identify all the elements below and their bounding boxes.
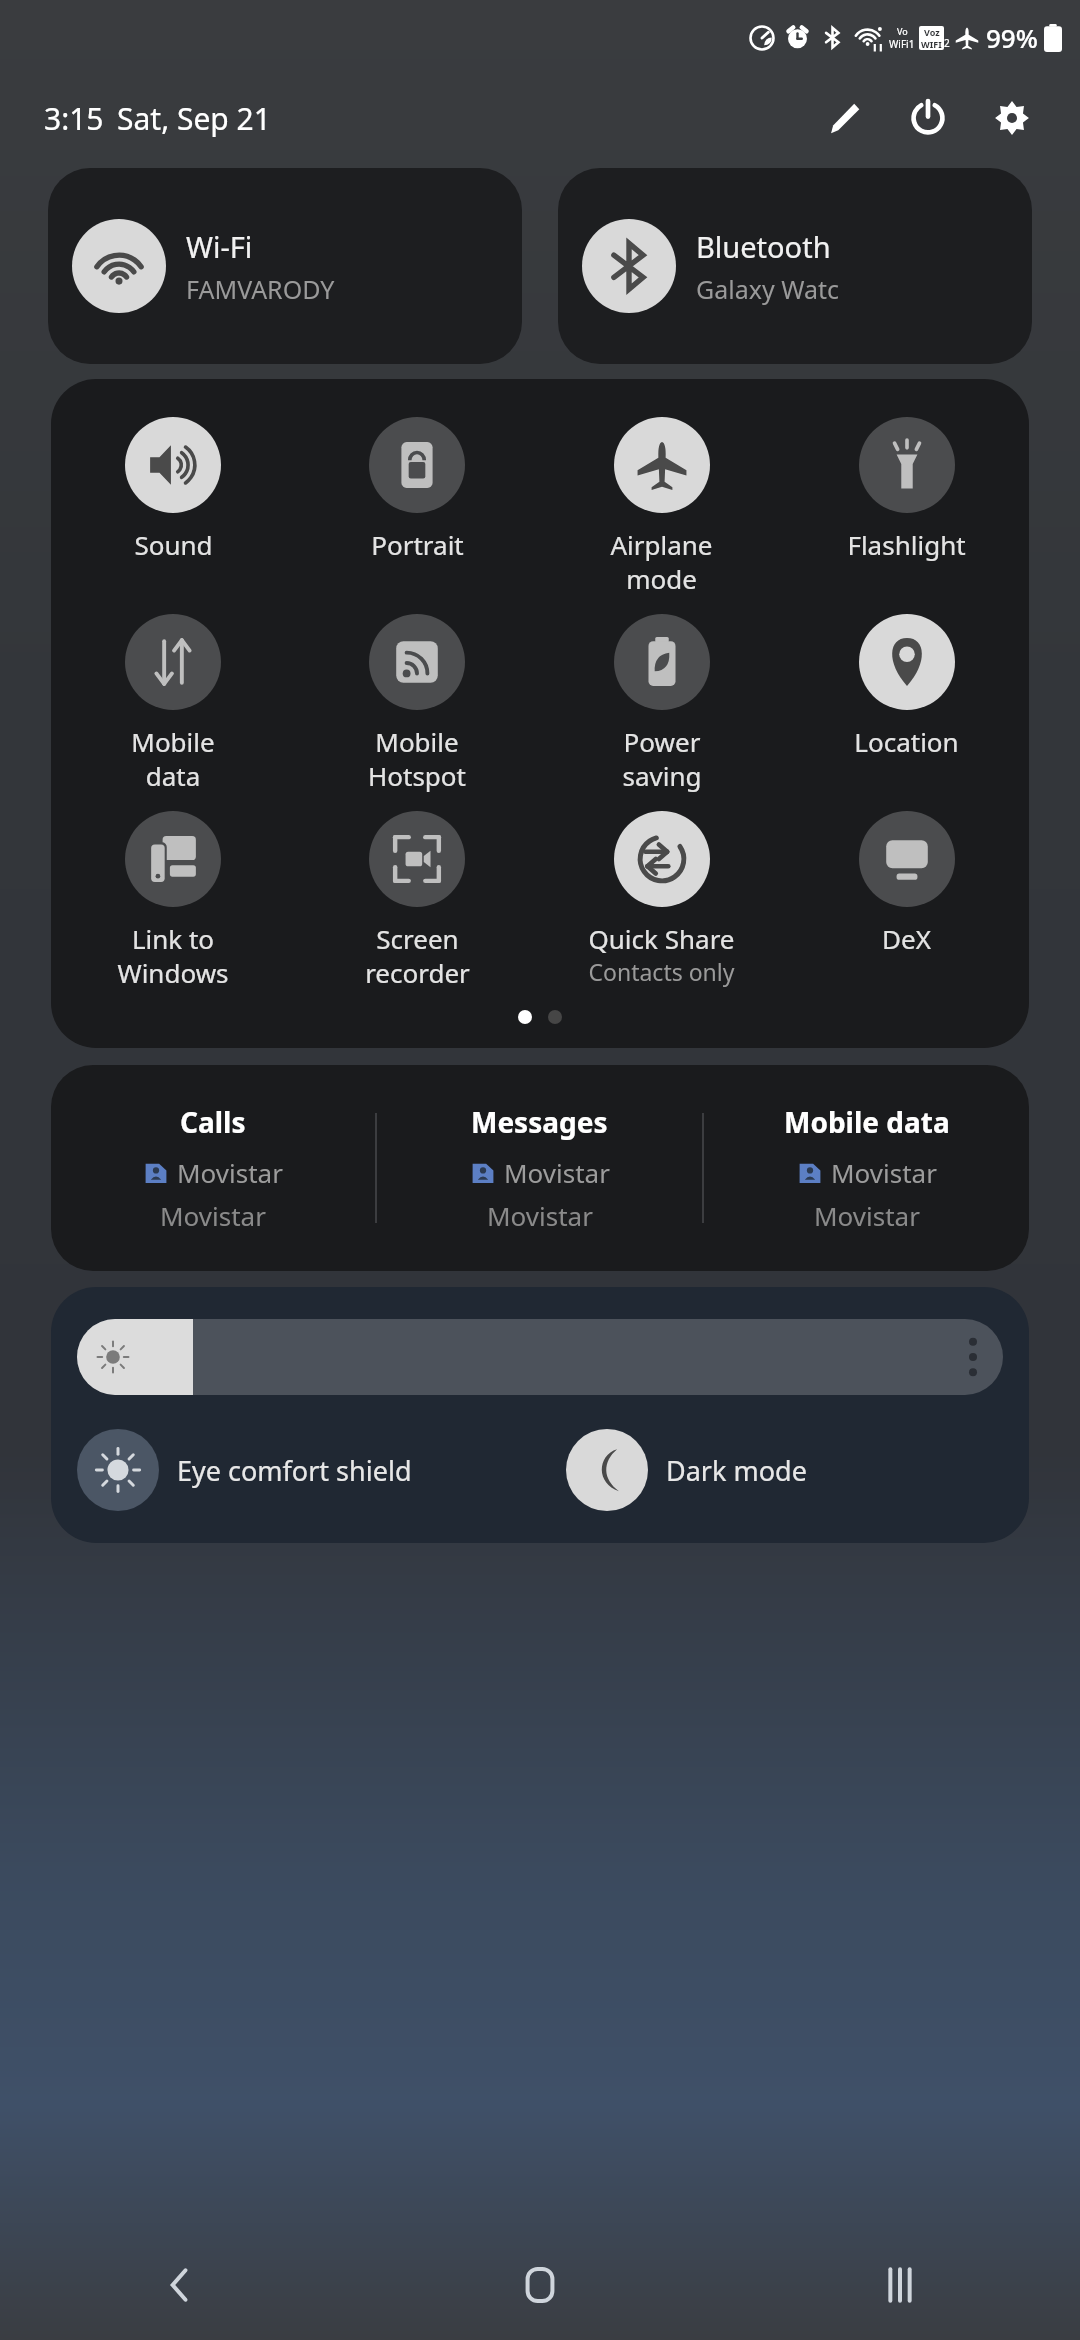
- button[interactable]: Screen recorder: [295, 807, 539, 994]
- staticText: DeX: [882, 921, 931, 956]
- staticText: 99%: [986, 20, 1038, 55]
- staticText: Wi-Fi: [186, 227, 253, 266]
- staticText: FAMVARODY: [186, 272, 335, 306]
- staticText: Movistar: [160, 1198, 266, 1233]
- button[interactable]: Edit: [814, 88, 874, 148]
- button[interactable]: Settings: [982, 88, 1042, 148]
- button[interactable]: Flashlight: [784, 413, 1029, 566]
- staticText: 2: [944, 36, 950, 50]
- staticText: Quick Share: [588, 921, 735, 956]
- staticText: Airplane mode: [610, 527, 713, 596]
- staticText: Mobile data: [784, 1103, 950, 1141]
- button[interactable]: Mobile data: [51, 610, 295, 797]
- staticText: Messages: [471, 1103, 608, 1141]
- staticText: Flashlight: [847, 527, 966, 562]
- button[interactable]: Messages: [377, 1103, 702, 1233]
- button[interactable]: [77, 1319, 1003, 1395]
- button[interactable]: Link to Windows: [51, 807, 295, 994]
- staticText: Eye comfort shield: [177, 1452, 412, 1489]
- staticText: WiFi1: [889, 37, 915, 51]
- button[interactable]: Calls: [51, 1103, 375, 1233]
- staticText: Portrait: [371, 527, 464, 562]
- button[interactable]: Home: [360, 2230, 720, 2340]
- staticText: Sound: [134, 527, 213, 562]
- staticText: Movistar: [487, 1198, 593, 1233]
- button[interactable]: Mobile Hotspot: [295, 610, 539, 797]
- button[interactable]: Back: [0, 2230, 360, 2340]
- button[interactable]: Quick Share: [539, 807, 784, 991]
- button[interactable]: Airplane mode: [539, 413, 784, 600]
- staticText: Location: [854, 724, 959, 759]
- staticText: Galaxy Watc: [696, 272, 839, 306]
- staticText: Sat, Sep 21: [117, 98, 271, 139]
- staticText: Contacts only: [588, 956, 735, 987]
- button[interactable]: DeX: [784, 807, 1029, 960]
- staticText: Vo: [897, 25, 908, 37]
- button[interactable]: Eye comfort shield: [51, 1429, 540, 1511]
- staticText: Dark mode: [666, 1452, 807, 1489]
- staticText: Movistar: [814, 1198, 920, 1233]
- staticText: Voz: [924, 26, 940, 38]
- staticText: Mobile data: [131, 724, 215, 793]
- staticText: Movistar: [504, 1155, 610, 1190]
- staticText: 3:15: [44, 98, 104, 139]
- staticText: Screen recorder: [365, 921, 470, 990]
- button[interactable]: Sound: [51, 413, 295, 566]
- button[interactable]: Portrait: [295, 413, 539, 566]
- staticText: Movistar: [177, 1155, 283, 1190]
- staticText: Movistar: [831, 1155, 937, 1190]
- button[interactable]: Wi-Fi: [48, 168, 522, 364]
- staticText: Power saving: [622, 724, 702, 793]
- button[interactable]: Mobile data: [704, 1103, 1029, 1233]
- button[interactable]: Location: [784, 610, 1029, 763]
- staticText: Link to Windows: [117, 921, 229, 990]
- button[interactable]: Power off: [898, 88, 958, 148]
- button[interactable]: Power saving: [539, 610, 784, 797]
- button[interactable]: Bluetooth: [558, 168, 1032, 364]
- button[interactable]: Dark mode: [540, 1429, 1029, 1511]
- staticText: Bluetooth: [696, 227, 831, 266]
- staticText: Mobile Hotspot: [368, 724, 466, 793]
- staticText: WIFI: [921, 38, 942, 50]
- button[interactable]: Recent apps: [720, 2230, 1080, 2340]
- staticText: Calls: [180, 1103, 246, 1141]
